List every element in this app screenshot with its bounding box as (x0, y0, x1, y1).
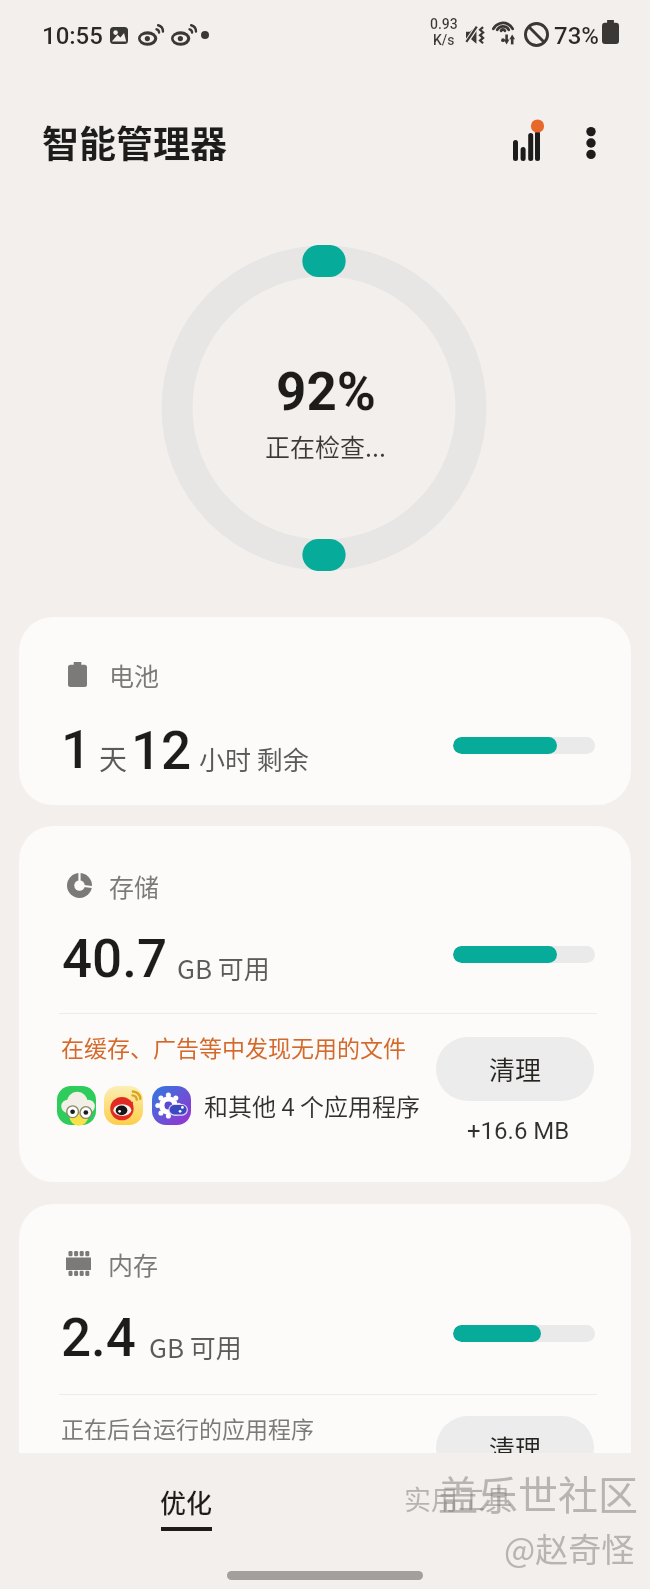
staticText: 内存 (108, 1246, 159, 1282)
button[interactable]: 优化 (112, 1461, 260, 1561)
button[interactable]: 内存 (19, 1204, 631, 1560)
staticText: 正在后台运行的应用程序 (61, 1411, 314, 1444)
staticText: 73% (554, 22, 599, 50)
staticText: 实用工具 (404, 1479, 512, 1518)
button[interactable]: 清理 (436, 1037, 594, 1101)
staticText: 92% (276, 361, 376, 423)
staticText: 10:55 (42, 22, 103, 50)
staticText: 天 (99, 738, 128, 779)
staticText: 2.4 (61, 1307, 136, 1369)
staticText: 在缓存、广告等中发现无用的文件 (61, 1030, 406, 1063)
staticText: GB 可用 (177, 949, 270, 987)
staticText: 1 (61, 719, 92, 781)
button[interactable]: 电池 (19, 617, 631, 805)
staticText: 清理 (489, 1429, 542, 1467)
staticText: 电池 (109, 657, 160, 693)
staticText: 40.7 (62, 928, 168, 990)
staticText: 正在检查... (265, 428, 386, 464)
button[interactable]: Usage statistics (498, 105, 560, 167)
staticText: 和其他 4 个应用程序 (204, 1088, 421, 1123)
staticText: GB 可用 (149, 1328, 242, 1366)
staticText: 清理 (489, 1050, 542, 1088)
button[interactable]: 清理 (436, 1416, 594, 1480)
staticText: 小时 剩余 (199, 740, 309, 778)
staticText: 12 (131, 720, 192, 782)
staticText: @赵奇怪 (504, 1524, 635, 1572)
staticText: 盖乐世社区 (438, 1464, 638, 1522)
button[interactable]: 存储 (19, 826, 631, 1182)
staticText: 存储 (109, 868, 160, 904)
staticText: 优化 (160, 1483, 213, 1521)
button[interactable]: More options (564, 105, 620, 161)
staticText: 0.93 (430, 16, 458, 32)
staticText: +16.6 MB (467, 1117, 570, 1145)
button[interactable]: 智能管理器 (42, 115, 227, 169)
staticText: K/s (433, 32, 455, 48)
